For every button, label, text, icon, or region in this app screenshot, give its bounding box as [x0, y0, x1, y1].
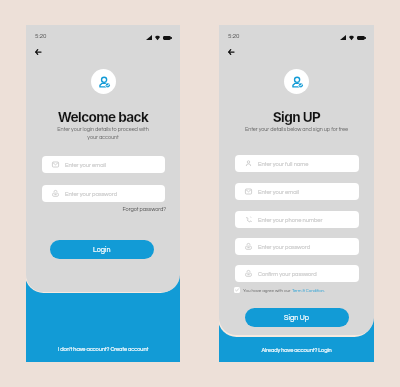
button[interactable]: Enter your password — [42, 185, 165, 202]
button[interactable]: Enter your phone number — [235, 211, 359, 228]
staticText: Enter your details below and sign up for… — [229, 126, 364, 132]
button[interactable]: Back — [31, 45, 45, 59]
staticText: Sign UP — [219, 109, 374, 125]
staticText: Sign Up — [284, 314, 310, 321]
button[interactable]: You have agree with our — [234, 287, 325, 293]
staticText: Enter your password — [258, 244, 311, 250]
button[interactable]: I don't have account? Create account — [26, 346, 180, 352]
button[interactable]: Already have account? Login — [219, 347, 374, 353]
staticText: Enter your full name — [258, 161, 309, 167]
staticText: You have agree with our — [243, 288, 292, 293]
button[interactable]: Sign Up — [245, 308, 349, 327]
staticText: Enter your phone number — [258, 217, 323, 223]
staticText: Login — [93, 246, 111, 253]
staticText: Enter your email — [258, 189, 299, 195]
button[interactable]: Forgot password? — [26, 206, 166, 212]
button[interactable]: Enter your email — [235, 183, 359, 200]
button[interactable]: Enter your full name — [235, 155, 359, 172]
button[interactable]: Enter your email — [42, 156, 165, 173]
button[interactable]: Confirm your password — [235, 265, 359, 282]
button[interactable]: Back — [224, 45, 238, 59]
button[interactable]: Login — [50, 240, 154, 259]
staticText: Confirm your password — [258, 271, 317, 277]
button[interactable]: Enter your password — [235, 238, 359, 255]
staticText: Enter your email — [65, 162, 106, 168]
staticText: 5:20 — [35, 33, 47, 39]
staticText: Welcome back — [26, 109, 180, 125]
staticText: Term & Condition. — [292, 288, 325, 292]
staticText: Enter your password — [65, 191, 118, 197]
staticText: 5:20 — [228, 33, 240, 39]
staticText: Enter your login details to proceed with… — [55, 126, 151, 140]
